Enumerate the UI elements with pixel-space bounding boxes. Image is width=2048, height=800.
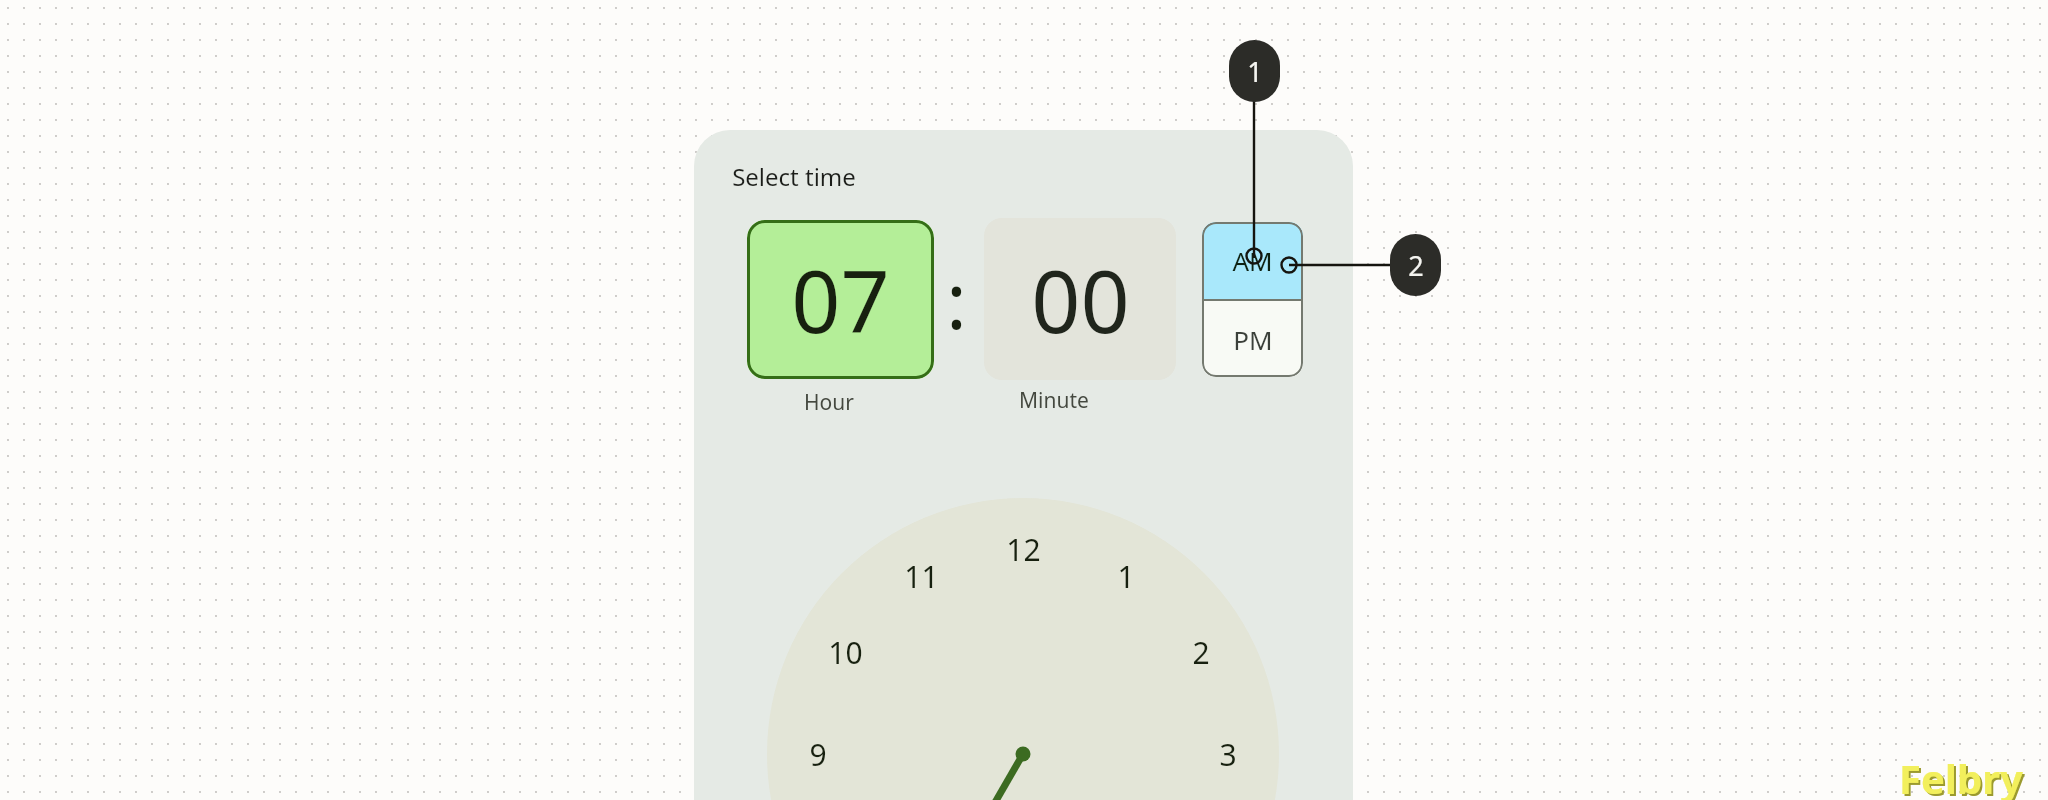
staticText: Minute bbox=[1019, 386, 1089, 415]
staticText: 1 bbox=[1117, 556, 1135, 597]
button[interactable]: 12 bbox=[993, 527, 1053, 571]
staticText: 9 bbox=[809, 734, 827, 775]
button[interactable]: AM bbox=[1202, 222, 1303, 299]
button[interactable]: 07 bbox=[747, 220, 934, 379]
staticText: PM bbox=[1233, 322, 1273, 357]
staticText: : bbox=[946, 248, 967, 352]
staticText: 10 bbox=[828, 632, 863, 673]
button[interactable]: 10 bbox=[815, 630, 875, 674]
staticText: 3 bbox=[1219, 734, 1237, 775]
button[interactable]: 1 bbox=[1096, 554, 1156, 598]
button[interactable]: 2 bbox=[1171, 630, 1231, 674]
button[interactable]: 3 bbox=[1198, 732, 1258, 776]
button[interactable]: 2 bbox=[1390, 234, 1441, 296]
button[interactable]: 9 bbox=[788, 732, 848, 776]
button[interactable]: 1 bbox=[1229, 40, 1280, 102]
staticText: 07 bbox=[791, 241, 890, 358]
button[interactable]: 00 bbox=[984, 218, 1176, 380]
staticText: 00 bbox=[1031, 241, 1130, 358]
button[interactable]: 11 bbox=[891, 554, 951, 598]
staticText: Felbry bbox=[1899, 751, 2023, 800]
button[interactable]: Clock dial bbox=[767, 498, 1279, 800]
staticText: 12 bbox=[1006, 529, 1041, 570]
staticText: 11 bbox=[904, 556, 939, 597]
staticText: 2 bbox=[1408, 247, 1424, 284]
staticText: AM bbox=[1232, 243, 1273, 278]
staticText: Hour bbox=[804, 388, 854, 417]
staticText: 2 bbox=[1192, 632, 1210, 673]
button[interactable]: PM bbox=[1202, 301, 1303, 377]
staticText: 1 bbox=[1247, 53, 1263, 90]
staticText: Felbry bbox=[1901, 753, 2025, 800]
staticText: Select time bbox=[732, 160, 856, 193]
